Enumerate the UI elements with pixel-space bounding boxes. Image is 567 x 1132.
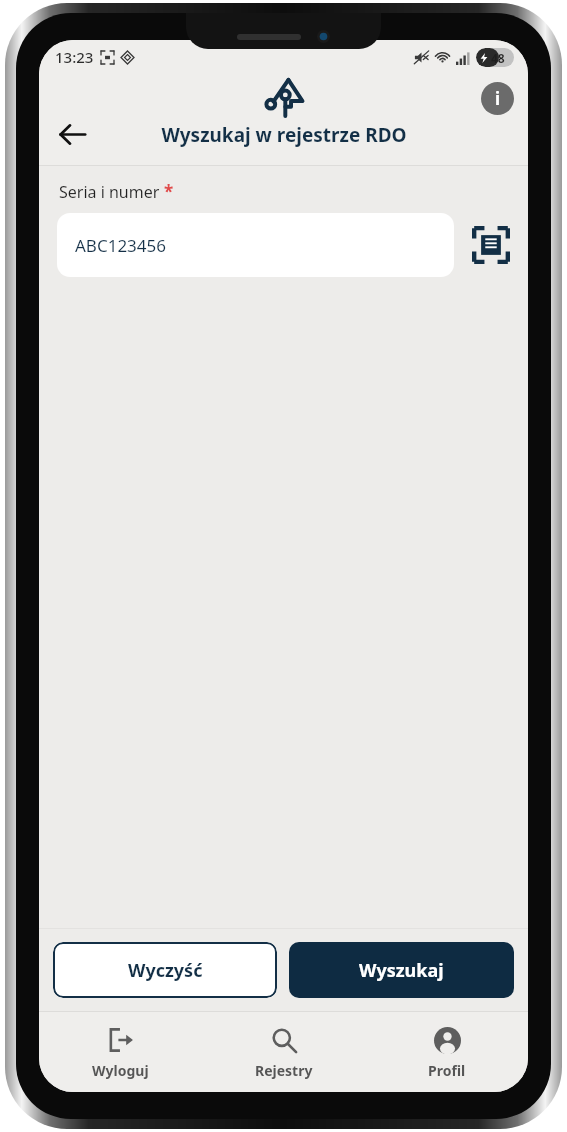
staticText: Profil <box>428 1061 466 1080</box>
staticText: Wyloguj <box>92 1061 149 1080</box>
button[interactable]: Wyczyść <box>53 942 277 998</box>
button[interactable]: Profil <box>365 1012 528 1092</box>
button[interactable]: Wyloguj <box>39 1012 202 1092</box>
button[interactable]: Skanuj dokument <box>468 222 514 268</box>
button[interactable]: Informacje <box>481 82 514 115</box>
button[interactable]: Wstecz <box>49 111 95 157</box>
button[interactable]: Wyszukaj <box>289 942 514 998</box>
staticText: Wyczyść <box>128 958 203 983</box>
staticText: 13:23 <box>55 47 94 67</box>
button[interactable]: Rejestry <box>202 1012 365 1092</box>
staticText: Wyszukaj w rejestrze RDO <box>161 122 407 148</box>
staticText: ABC123456 <box>75 234 167 257</box>
staticText: * <box>164 180 174 203</box>
staticText: Seria i numer <box>59 181 164 203</box>
staticText: i <box>495 87 501 110</box>
staticText: 48 <box>491 50 505 66</box>
staticText: Wyszukaj <box>359 958 444 983</box>
staticText: Rejestry <box>255 1061 313 1080</box>
button[interactable]: ABC123456 <box>57 213 454 277</box>
